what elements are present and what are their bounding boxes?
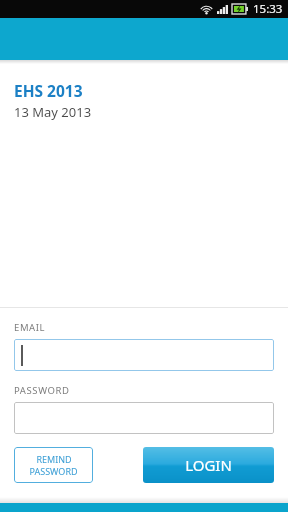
other: Cellular signal bbox=[217, 5, 228, 14]
staticText: EMAIL bbox=[14, 321, 46, 334]
staticText: REMIND bbox=[36, 453, 72, 465]
button[interactable] bbox=[14, 339, 274, 371]
other: Wi-Fi signal bbox=[200, 4, 213, 14]
staticText: 13 May 2013 bbox=[14, 103, 92, 121]
staticText: PASSWORD bbox=[29, 465, 78, 477]
button[interactable]: LOGIN bbox=[143, 447, 274, 483]
staticText: EHS 2013 bbox=[14, 80, 83, 101]
staticText: LOGIN bbox=[185, 455, 232, 475]
staticText: PASSWORD bbox=[14, 384, 70, 397]
button[interactable]: REMIND bbox=[14, 447, 93, 483]
button[interactable] bbox=[14, 402, 274, 434]
other: Battery charging bbox=[232, 4, 248, 14]
staticText: 15:33 bbox=[253, 1, 283, 17]
